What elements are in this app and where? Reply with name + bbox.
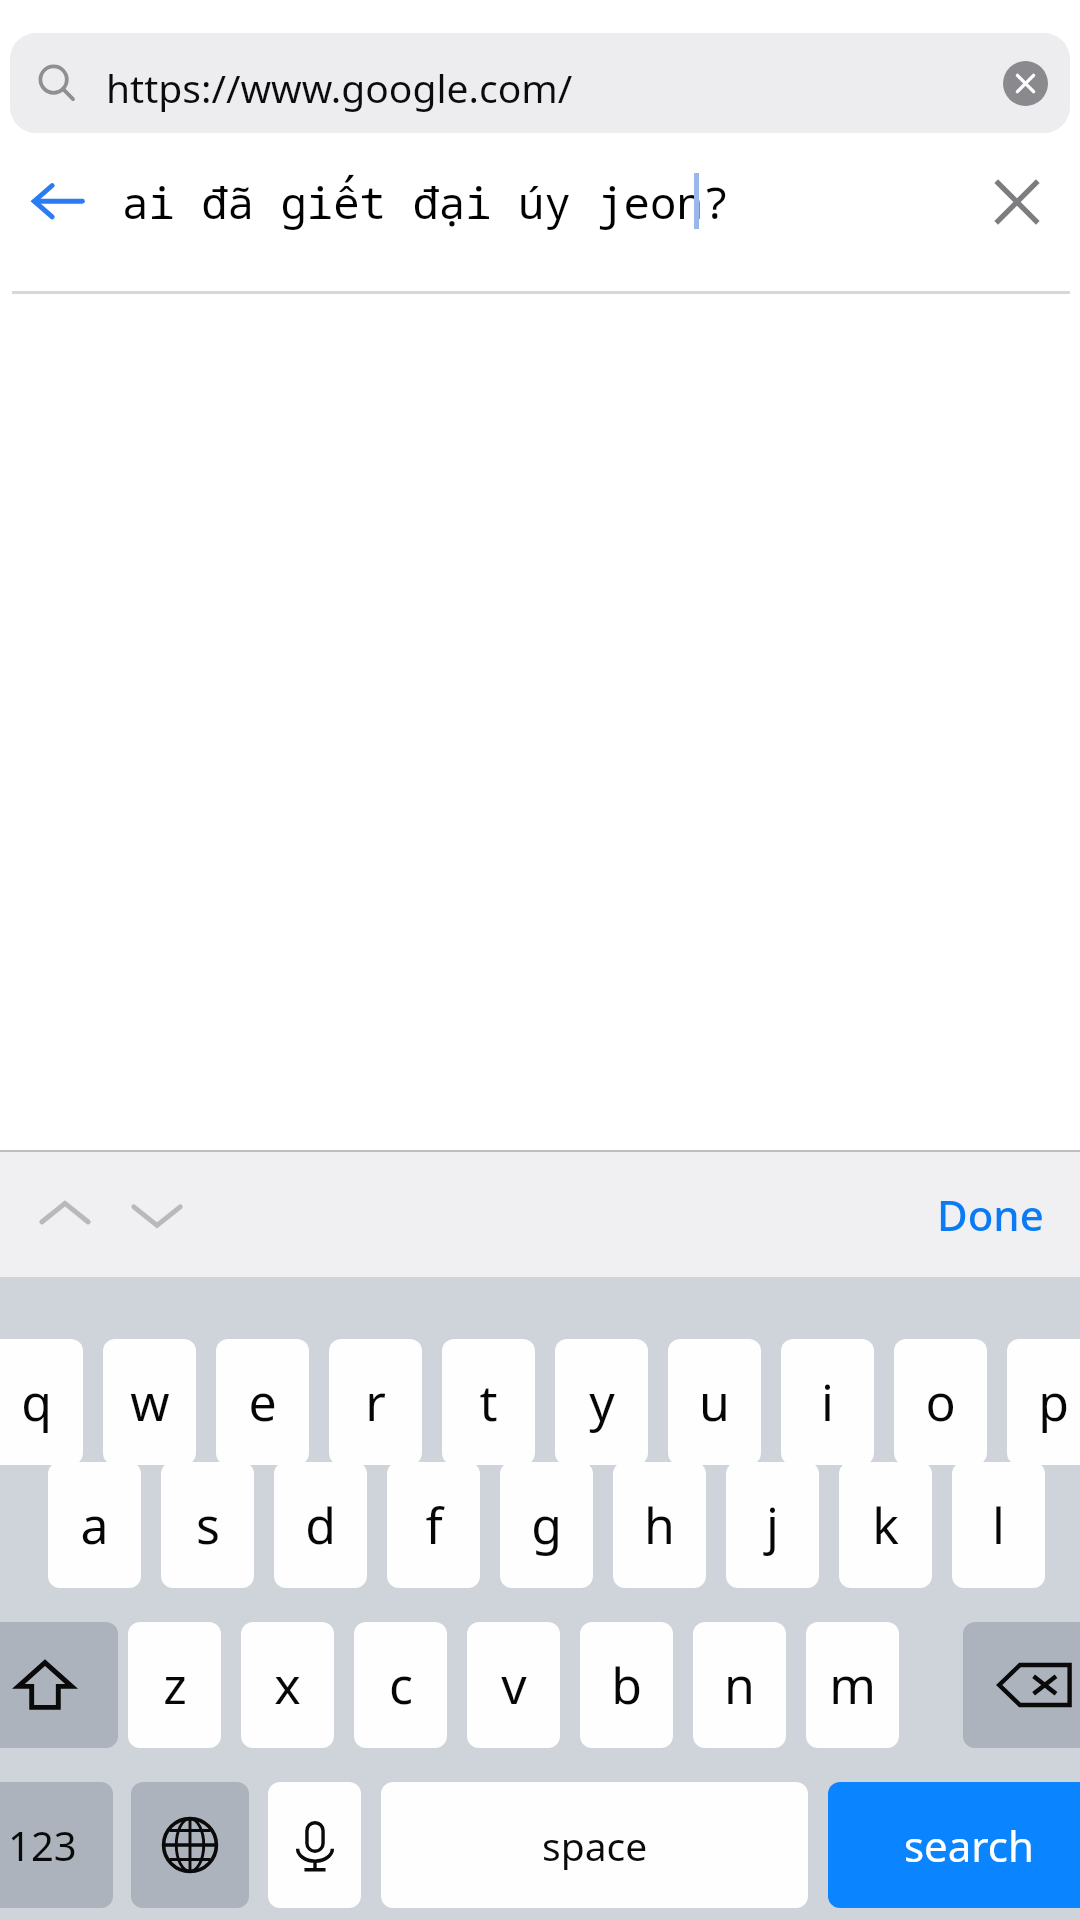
button[interactable]: https://www.google.com/ [10,33,1070,133]
button[interactable]: n [693,1622,786,1748]
button[interactable]: Change keyboard [131,1782,249,1908]
staticText: n [724,1651,755,1719]
staticText: b [611,1651,642,1719]
staticText: v [501,1651,527,1719]
button[interactable]: Previous [18,160,98,240]
button[interactable]: w [103,1339,196,1465]
button[interactable]: Clear address [1003,61,1048,106]
staticText: space [542,1819,648,1872]
staticText: q [21,1368,52,1436]
button[interactable]: Shift [0,1622,118,1748]
button[interactable]: a [48,1462,141,1588]
staticText: u [699,1368,730,1436]
staticText: l [992,1491,1005,1559]
staticText: https://www.google.com/ [106,61,573,114]
button[interactable]: j [726,1462,819,1588]
staticText: t [479,1368,498,1436]
staticText: j [766,1491,779,1559]
button[interactable]: i [781,1339,874,1465]
button[interactable]: h [613,1462,706,1588]
staticText: g [531,1491,562,1559]
button[interactable]: v [467,1622,560,1748]
button[interactable]: Previous result [20,1170,110,1260]
staticText: x [274,1651,301,1719]
button[interactable]: q [0,1339,83,1465]
button[interactable]: Next result [112,1170,202,1260]
button[interactable]: p [1007,1339,1080,1465]
button[interactable]: t [442,1339,535,1465]
button[interactable]: l [952,1462,1045,1588]
button[interactable]: c [354,1622,447,1748]
staticText: k [872,1491,899,1559]
button[interactable]: r [329,1339,422,1465]
button[interactable]: b [580,1622,673,1748]
staticText: p [1038,1368,1069,1436]
staticText: z [163,1651,187,1719]
button[interactable]: e [216,1339,309,1465]
staticText: s [196,1491,220,1559]
staticText: a [80,1491,109,1559]
staticText: h [644,1491,675,1559]
button[interactable]: x [241,1622,334,1748]
staticText: 123 [8,1818,77,1872]
staticText: f [425,1491,443,1559]
staticText: e [248,1368,277,1436]
button[interactable]: Numbers [0,1782,113,1908]
button[interactable]: s [161,1462,254,1588]
staticText: m [829,1651,876,1719]
button[interactable]: Voice input [268,1782,361,1908]
staticText: w [130,1368,170,1436]
button[interactable]: z [128,1622,221,1748]
button[interactable]: o [894,1339,987,1465]
button[interactable]: Done [920,1170,1060,1258]
button[interactable]: d [274,1462,367,1588]
button[interactable]: y [555,1339,648,1465]
button[interactable]: search [828,1782,1080,1908]
staticText: r [365,1368,386,1436]
button[interactable]: f [387,1462,480,1588]
staticText: search [904,1817,1034,1874]
button[interactable]: space [381,1782,808,1908]
button[interactable]: k [839,1462,932,1588]
button[interactable]: m [806,1622,899,1748]
staticText: c [389,1651,413,1719]
staticText: o [925,1368,956,1436]
staticText: d [305,1491,336,1559]
button[interactable]: Close [975,160,1059,244]
staticText: y [589,1368,615,1436]
staticText: i [821,1368,834,1436]
button[interactable]: u [668,1339,761,1465]
staticText: ai đã giết đại úy jeon? [122,172,730,232]
button[interactable]: Backspace [963,1622,1080,1748]
staticText: Done [937,1186,1044,1243]
button[interactable]: g [500,1462,593,1588]
